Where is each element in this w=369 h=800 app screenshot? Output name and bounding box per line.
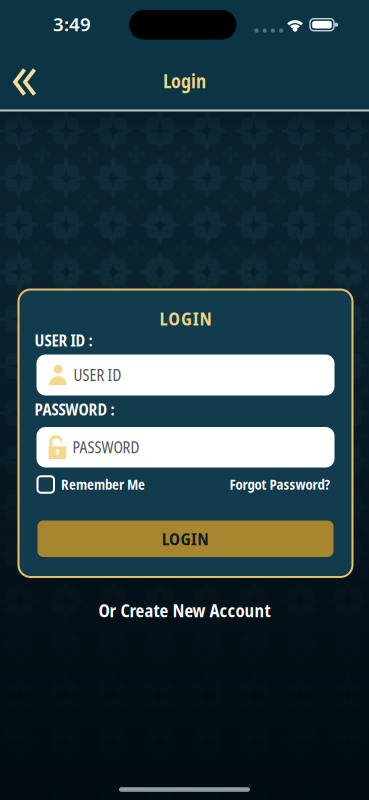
staticText: Or Create New Account (98, 599, 270, 622)
staticText: Login (163, 68, 206, 94)
button[interactable]: LOGIN (37, 520, 333, 557)
staticText: PASSWORD : (34, 399, 114, 420)
staticText: 3:49 (53, 12, 91, 36)
button[interactable]: Or Create New Account (98, 599, 270, 622)
staticText: USER ID (73, 365, 121, 385)
staticText: Forgot Password? (229, 475, 330, 494)
button[interactable]: Remember Me (37, 475, 145, 494)
button[interactable]: PASSWORD (36, 427, 334, 467)
staticText: LOGIN (162, 527, 209, 550)
staticText: LOGIN (159, 306, 212, 331)
button[interactable]: Forgot Password? (229, 475, 330, 494)
button[interactable]: USER ID (36, 354, 334, 395)
staticText: Remember Me (61, 475, 145, 494)
staticText: USER ID : (34, 330, 92, 351)
button[interactable]: Back (0, 0, 44, 110)
staticText: PASSWORD (72, 437, 139, 458)
